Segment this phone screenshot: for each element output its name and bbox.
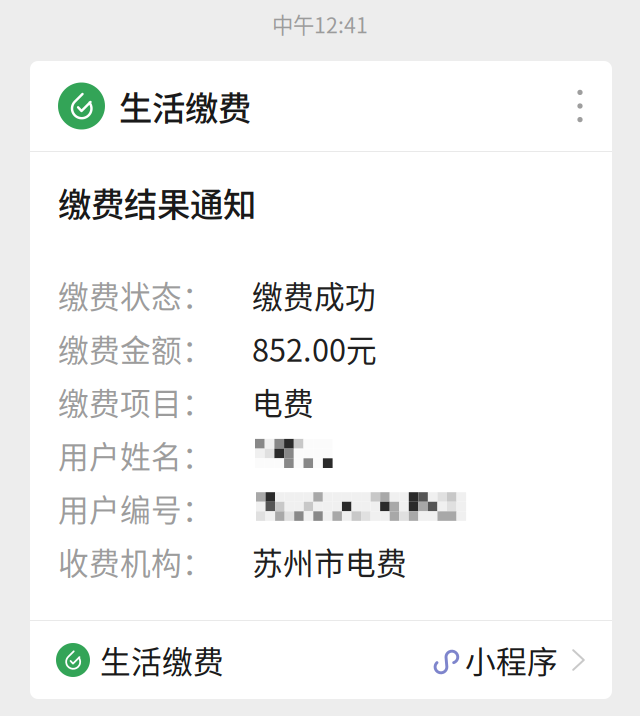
staticText: 缴费结果通知 [58,178,256,226]
staticText: 生活缴费 [119,82,251,130]
staticText: 缴费金额： [58,326,213,370]
staticText: 缴费状态： [58,273,213,317]
staticText: 小程序 [465,638,558,682]
staticText: 缴费项目： [58,379,213,424]
staticText: 缴费成功 [252,273,376,317]
staticText: 生活缴费 [100,638,224,682]
staticText: 中午12:41 [272,9,368,39]
button[interactable]: 更多 [557,73,603,139]
staticText: 用户姓名： [58,433,213,477]
staticText: 收费机构： [58,539,213,584]
staticText: 电费 [252,379,314,424]
button[interactable]: 生活缴费 [30,621,612,699]
staticText: 用户编号： [58,486,213,530]
staticText: 852.00元 [252,326,377,370]
staticText: 苏州市电费 [252,539,407,584]
